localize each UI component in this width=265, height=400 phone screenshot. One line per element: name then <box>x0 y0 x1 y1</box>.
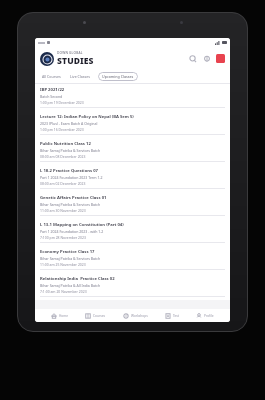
button[interactable]: All Courses <box>42 72 61 81</box>
button[interactable]: Courses <box>84 309 107 322</box>
staticText: 08:00 am 08 December 2023 <box>40 154 86 159</box>
button[interactable]: Live Classes <box>70 72 91 81</box>
staticText: Bihar Samaj Patrika & Services Batch <box>40 256 101 261</box>
staticText: 1:00 pm 16 December 2023 <box>40 127 84 132</box>
staticText: All Courses <box>42 74 61 79</box>
button[interactable]: Test <box>164 309 181 322</box>
button[interactable]: Search <box>188 54 198 64</box>
staticText: Courses <box>93 314 106 318</box>
staticText: Home <box>59 314 69 318</box>
button[interactable]: L 13-1 Mapping on Constitution (Part 04) <box>35 219 230 246</box>
staticText: 7:100 pm 28 November 2023 <box>40 235 86 240</box>
staticText: Economy Practice Class 17 <box>40 249 95 255</box>
button[interactable]: IBP 2021/22 <box>35 84 230 111</box>
staticText: 08:00 am 02 December 2023 <box>40 181 86 186</box>
button[interactable]: Profile <box>216 54 225 63</box>
staticText: 11:00 am 30 November 2023 <box>40 208 86 213</box>
staticText: STUDIES <box>57 55 94 67</box>
staticText: Live Classes <box>70 74 91 79</box>
staticText: Genetic Affairs Practice Class 01 <box>40 195 107 201</box>
staticText: Relationship India Practice Class 02 <box>40 276 115 282</box>
staticText: Profile <box>204 314 214 318</box>
staticText: Part 1 2024 Foundation 2023 - with 1-2 <box>40 229 104 234</box>
staticText: 7:1:00 am 20 November 2023 <box>40 289 87 294</box>
staticText: Bihar Samaj Patrika & Services Batch <box>40 148 101 153</box>
staticText: Workshops <box>131 314 148 318</box>
staticText: L 18-2 Practice Questions 07 <box>40 168 98 174</box>
staticText: 1:00 pm 19 December 2023 <box>40 100 84 105</box>
button[interactable]: Upcoming Classes <box>102 72 134 81</box>
button[interactable]: L 18-2 Practice Questions 07 <box>35 165 230 192</box>
button[interactable]: Home <box>50 309 70 322</box>
staticText: 2023 (Plus) - Exam Batch A Original <box>40 121 98 126</box>
button[interactable]: Workshops <box>122 309 149 322</box>
button[interactable]: Profile <box>195 309 215 322</box>
button[interactable]: Notifications <box>202 54 212 64</box>
staticText: IBP 2021/22 <box>40 87 65 93</box>
staticText: Lecture 12: Indian Policy on Nepal (BA S… <box>40 114 134 120</box>
staticText: Part 1 2024 Foundation 2023 Term 1-2 <box>40 175 103 180</box>
staticText: Test <box>173 314 180 318</box>
button[interactable]: Economy Practice Class 17 <box>35 246 230 273</box>
staticText: DOWN GLOBAL <box>57 51 83 55</box>
staticText: 11:00 am 25 November 2023 <box>40 262 86 267</box>
staticText: Upcoming Classes <box>102 74 134 79</box>
button[interactable]: Public Nutrition Class 12 <box>35 138 230 165</box>
button[interactable]: Genetic Affairs Practice Class 01 <box>35 192 230 219</box>
staticText: L 13-1 Mapping on Constitution (Part 04) <box>40 222 124 228</box>
staticText: Public Nutrition Class 12 <box>40 141 91 147</box>
button[interactable]: Lecture 12: Indian Policy on Nepal (BA S… <box>35 111 230 138</box>
staticText: Batch Second <box>40 94 63 99</box>
staticText: Bihar Samaj Patrika & Services Batch <box>40 202 101 207</box>
staticText: Bihar Samaj Patrika & All India Batch <box>40 283 101 288</box>
button[interactable]: Relationship India Practice Class 02 <box>35 273 230 300</box>
